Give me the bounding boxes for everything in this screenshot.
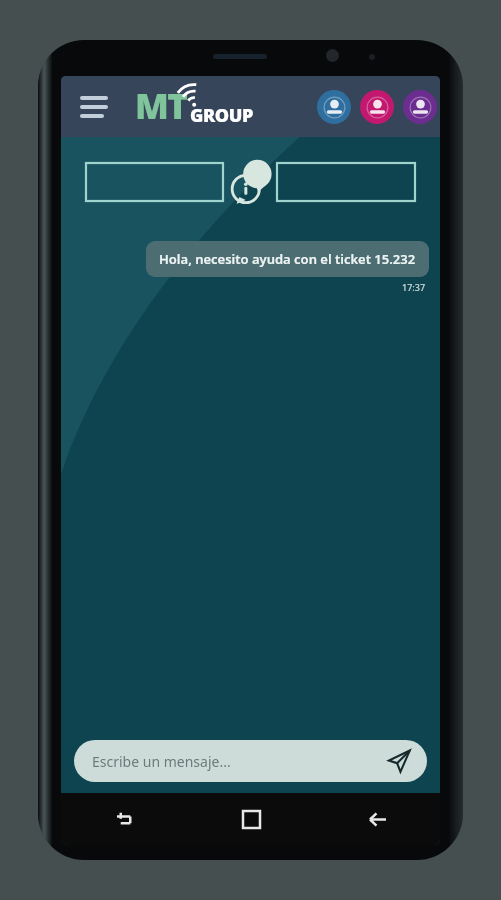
- staticText: GROUP: [190, 103, 253, 128]
- button[interactable]: Partner shop: [360, 90, 394, 124]
- button[interactable]: Hola, necesito ayuda con el ticket 15.23…: [146, 241, 429, 277]
- button[interactable]: Recent apps: [105, 799, 145, 839]
- button[interactable]: Partner site: [317, 90, 351, 124]
- button[interactable]: Send: [385, 747, 413, 775]
- button[interactable]: Escribe un mensaje...: [74, 740, 427, 782]
- staticText: MT: [135, 82, 187, 126]
- button[interactable]: Information: [222, 157, 280, 207]
- button[interactable]: Home: [231, 799, 271, 839]
- staticText: Escribe un mensaje...: [92, 752, 385, 771]
- button[interactable]: Partner cloud: [403, 90, 437, 124]
- button[interactable]: Back: [357, 799, 397, 839]
- staticText: 17:37: [402, 281, 426, 293]
- staticText: Hola, necesito ayuda con el ticket 15.23…: [159, 250, 416, 268]
- button[interactable]: Menu: [73, 86, 115, 128]
